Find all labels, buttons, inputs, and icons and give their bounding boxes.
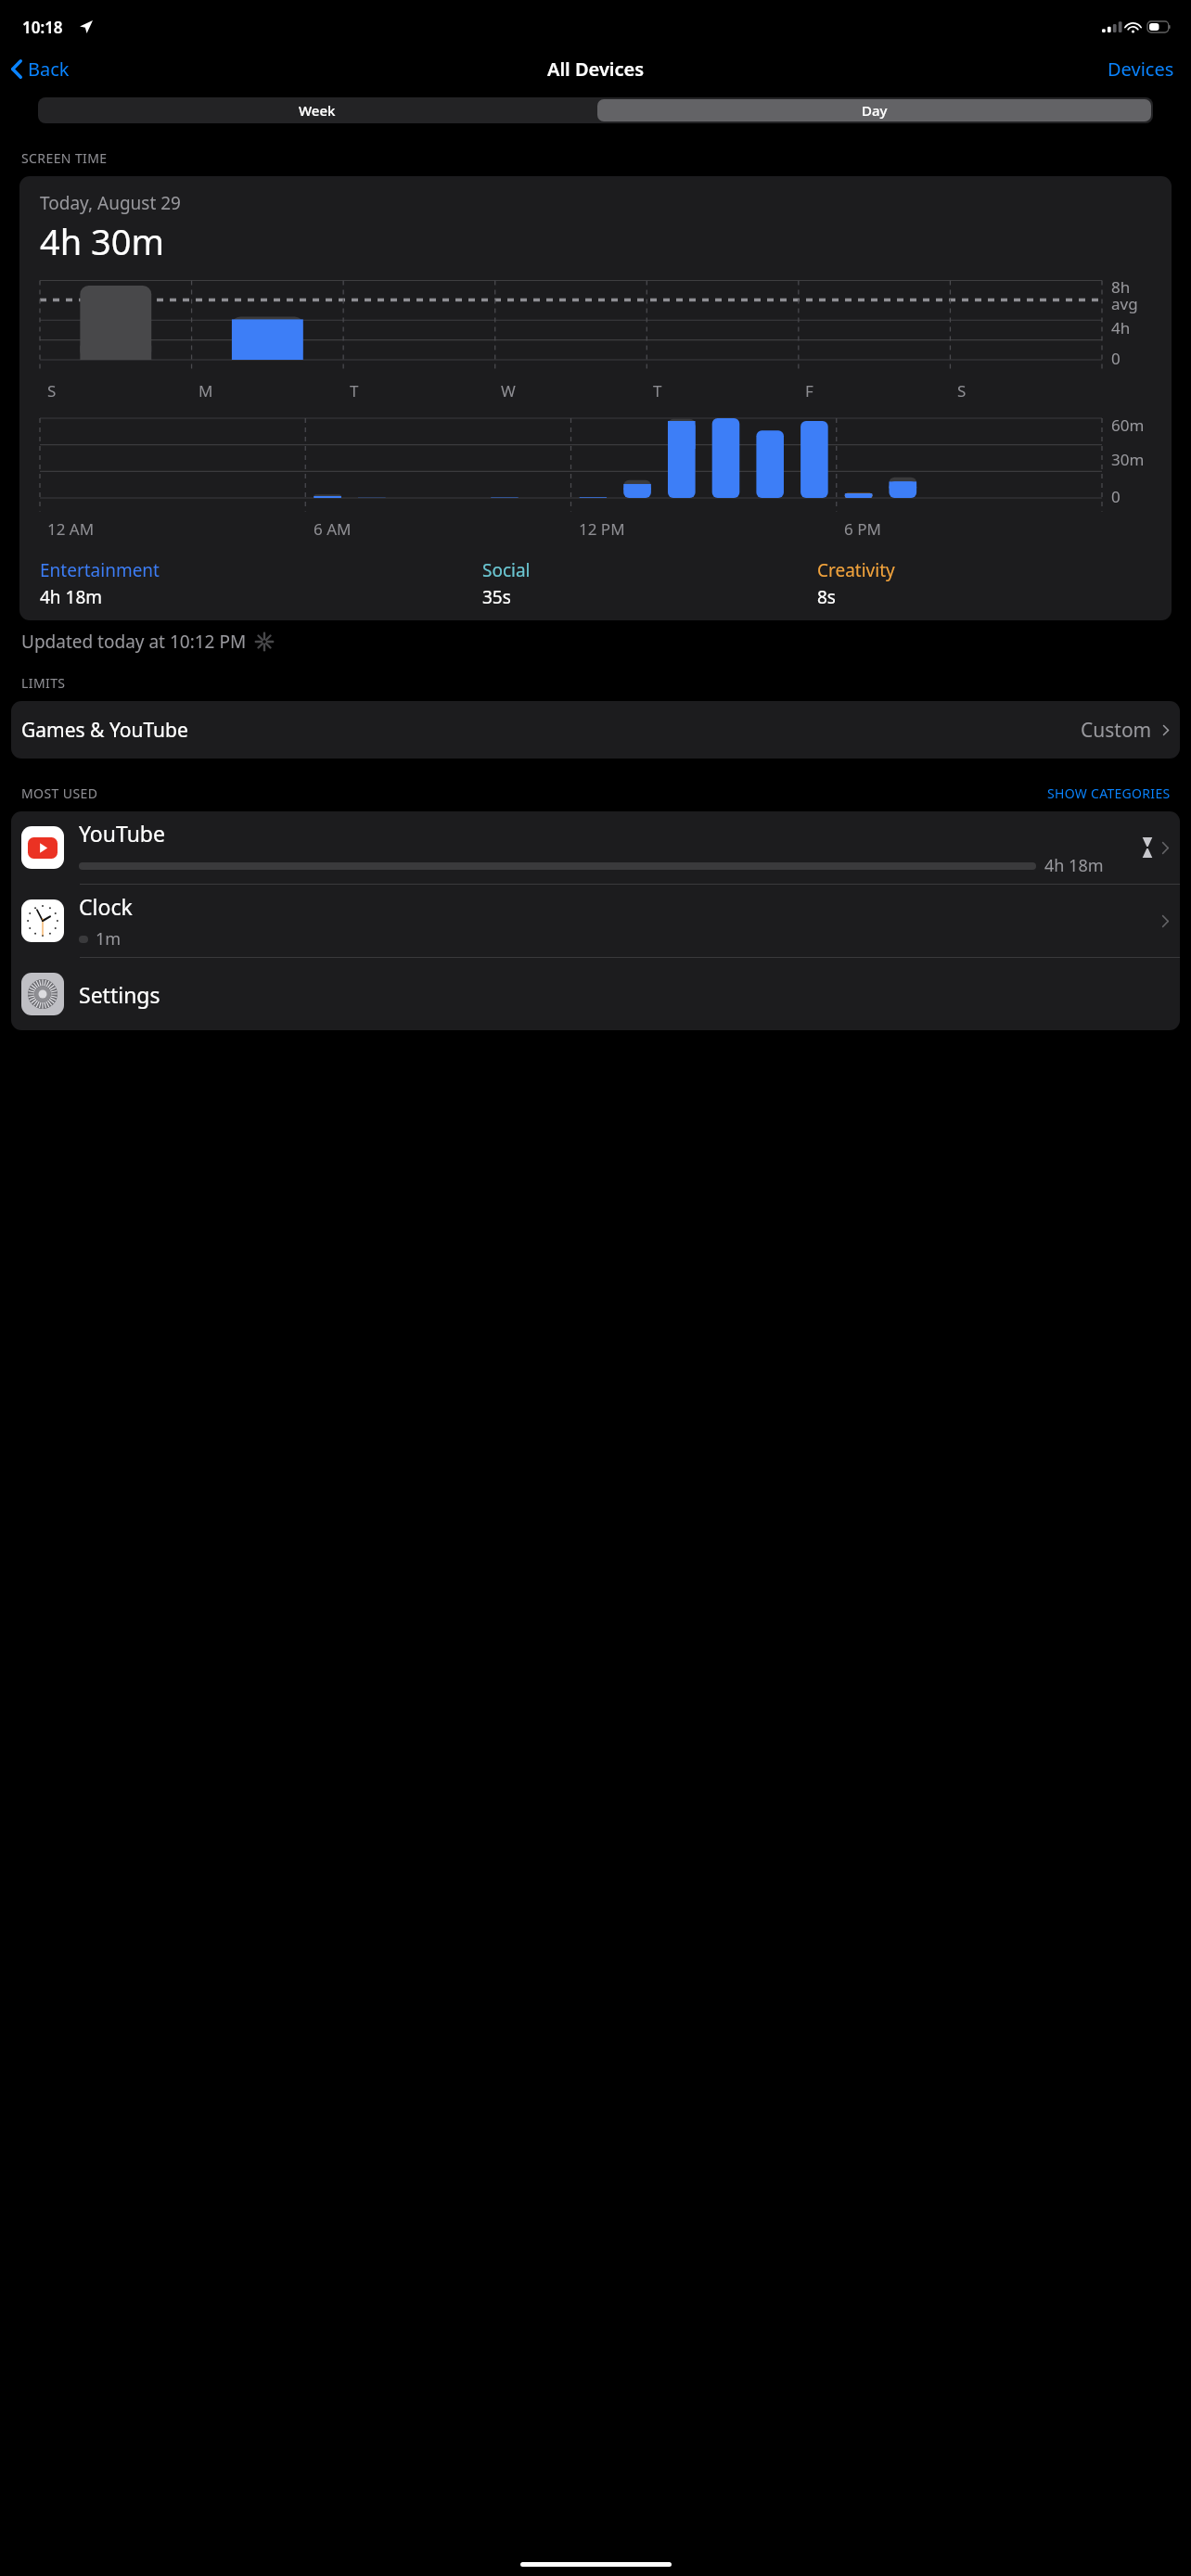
staticText: 6 AM: [314, 518, 352, 540]
staticText: 12 AM: [47, 518, 95, 540]
button[interactable]: Devices: [1102, 53, 1180, 85]
staticText: avg: [1111, 293, 1138, 314]
staticText: MOST USED: [21, 784, 98, 802]
button[interactable]: Week: [38, 97, 595, 123]
button[interactable]: Back: [6, 53, 75, 85]
staticText: Social: [482, 558, 531, 582]
staticText: 4h: [1111, 317, 1131, 338]
staticText: Entertainment: [40, 558, 160, 582]
staticText: 8h: [1111, 276, 1131, 298]
staticText: YouTube: [79, 819, 165, 848]
button[interactable]: Day: [597, 99, 1151, 121]
staticText: Custom: [1081, 717, 1152, 744]
staticText: F: [805, 380, 813, 402]
staticText: 6 PM: [844, 518, 881, 540]
staticText: Updated today at 10:12 PM: [21, 630, 247, 654]
staticText: All Devices: [547, 57, 645, 82]
button[interactable]: Settings: [11, 958, 1180, 1030]
staticText: S: [957, 380, 967, 402]
staticText: Week: [299, 101, 336, 120]
staticText: 0: [1111, 348, 1121, 369]
staticText: M: [198, 380, 213, 402]
staticText: Back: [28, 57, 70, 82]
staticText: 12 PM: [579, 518, 625, 540]
staticText: 8s: [817, 585, 836, 609]
staticText: T: [350, 380, 359, 402]
other: App limit: [1141, 837, 1154, 858]
staticText: LIMITS: [21, 674, 66, 692]
button[interactable]: YouTube: [11, 811, 1180, 884]
staticText: 4h 18m: [1044, 854, 1104, 877]
staticText: T: [653, 380, 662, 402]
staticText: S: [47, 380, 57, 402]
staticText: Settings: [79, 980, 160, 1009]
button[interactable]: Today, August 29: [19, 176, 1172, 620]
staticText: Games & YouTube: [21, 717, 188, 744]
staticText: 0: [1111, 486, 1121, 507]
staticText: 35s: [482, 585, 511, 609]
staticText: SCREEN TIME: [21, 149, 108, 167]
staticText: Devices: [1108, 57, 1174, 82]
button[interactable]: SHOW CATEGORIES: [1047, 784, 1171, 802]
staticText: Creativity: [817, 558, 895, 582]
staticText: SHOW CATEGORIES: [1047, 784, 1171, 802]
staticText: 10:18: [22, 17, 63, 38]
staticText: 60m: [1111, 414, 1145, 436]
button[interactable]: Games & YouTube: [11, 701, 1180, 759]
staticText: W: [501, 380, 516, 402]
staticText: 4h 18m: [40, 585, 103, 609]
staticText: Day: [862, 101, 888, 120]
staticText: 4h 30m: [40, 217, 165, 265]
staticText: 1m: [96, 927, 122, 950]
staticText: Today, August 29: [40, 191, 181, 215]
staticText: Clock: [79, 892, 133, 921]
button[interactable]: Clock: [11, 885, 1180, 957]
staticText: 30m: [1111, 449, 1145, 470]
